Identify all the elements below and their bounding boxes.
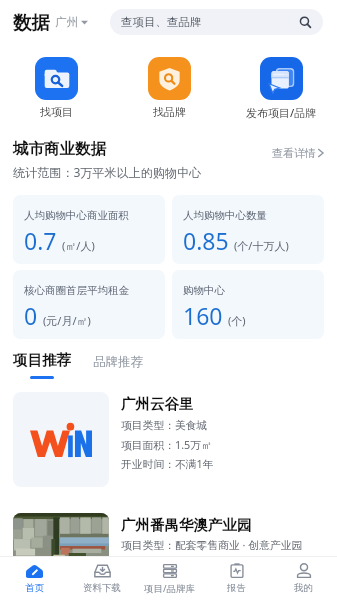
staticText: 0: [24, 300, 38, 331]
staticText: 项目推荐: [13, 351, 71, 369]
button[interactable]: 品牌推荐: [93, 354, 143, 379]
staticText: 查项目、查品牌: [121, 15, 202, 29]
button[interactable]: 查项目、查品牌: [110, 9, 323, 35]
staticText: (个): [228, 313, 246, 328]
staticText: 资料下载: [83, 582, 121, 594]
staticText: 开业时间：不满1年: [121, 456, 214, 471]
staticText: 找项目: [40, 105, 73, 119]
button[interactable]: 报告: [203, 557, 270, 600]
staticText: 城市商业数据: [13, 139, 106, 159]
button[interactable]: 购物中心: [172, 270, 324, 339]
staticText: 广州番禺华澳产业园: [121, 516, 252, 534]
staticText: 0.7: [24, 225, 57, 256]
staticText: (个/十万人): [234, 238, 289, 253]
button[interactable]: 广州番禺华澳产业园: [0, 513, 337, 600]
staticText: 核心商圈首层平均租金: [24, 284, 129, 297]
button[interactable]: 切换城市 广州: [55, 15, 88, 29]
button[interactable]: 核心商圈首层平均租金: [13, 270, 165, 339]
staticText: 首页: [25, 582, 44, 594]
staticText: 160: [183, 300, 223, 331]
staticText: 数据: [13, 11, 50, 34]
staticText: 查看详情: [272, 146, 316, 160]
button[interactable]: 人均购物中心商业面积: [13, 195, 165, 264]
staticText: 项目类型：美食城: [121, 419, 208, 433]
button[interactable]: 查看详情: [266, 138, 324, 160]
staticText: 品牌推荐: [93, 354, 143, 370]
button[interactable]: 找项目: [0, 57, 113, 119]
staticText: (㎡/人): [62, 238, 95, 253]
staticText: 报告: [227, 582, 246, 594]
button[interactable]: 我的: [270, 557, 337, 600]
staticText: 广州云谷里: [121, 395, 194, 413]
staticText: 广州: [55, 15, 78, 29]
button[interactable]: 找品牌: [113, 57, 225, 119]
button[interactable]: 资料下载: [68, 557, 136, 600]
staticText: 项目面积：1.5万㎡: [121, 437, 212, 452]
staticText: 我的: [294, 582, 313, 594]
button[interactable]: 发布项目/品牌: [225, 57, 337, 120]
staticText: 发布项目/品牌: [246, 105, 317, 120]
staticText: 统计范围：3万平米以上的购物中心: [13, 164, 202, 181]
staticText: 找品牌: [153, 105, 186, 119]
button[interactable]: 项目/品牌库: [136, 557, 203, 600]
staticText: 0.85: [183, 225, 229, 256]
staticText: 人均购物中心数量: [183, 209, 267, 222]
staticText: 人均购物中心商业面积: [24, 209, 129, 222]
button[interactable]: 项目推荐: [13, 351, 71, 379]
staticText: 项目类型：配套零售商业 · 创意产业园: [121, 537, 303, 552]
staticText: (元/月/㎡): [43, 313, 91, 328]
button[interactable]: 首页: [0, 557, 68, 600]
button[interactable]: 人均购物中心数量: [172, 195, 324, 264]
staticText: 项目/品牌库: [144, 582, 196, 595]
button[interactable]: 广州云谷里: [0, 392, 337, 487]
staticText: 购物中心: [183, 284, 225, 297]
